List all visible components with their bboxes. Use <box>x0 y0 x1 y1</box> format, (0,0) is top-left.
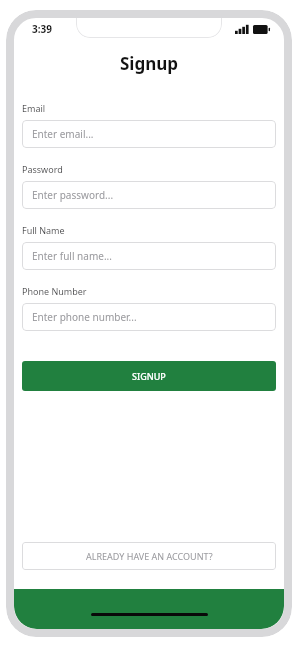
staticText: Email <box>22 102 46 114</box>
staticText: Password <box>22 163 63 175</box>
other: Home indicator <box>14 589 284 629</box>
staticText: SIGNUP <box>132 370 166 382</box>
staticText: Enter email... <box>32 127 94 141</box>
button[interactable]: Enter email... <box>22 120 276 148</box>
button[interactable]: Enter phone number... <box>22 303 276 331</box>
staticText: Enter phone number... <box>32 310 137 324</box>
staticText: Enter password... <box>32 188 114 202</box>
button[interactable]: Enter full name... <box>22 242 276 270</box>
staticText: Phone Number <box>22 285 87 297</box>
staticText: Full Name <box>22 224 65 236</box>
staticText: Signup <box>14 52 284 75</box>
staticText: ALREADY HAVE AN ACCOUNT? <box>86 550 213 562</box>
staticText: Enter full name... <box>32 249 112 263</box>
button[interactable]: ALREADY HAVE AN ACCOUNT? <box>22 542 276 570</box>
button[interactable]: SIGNUP <box>22 361 276 391</box>
button[interactable]: Enter password... <box>22 181 276 209</box>
staticText: 3:39 <box>32 22 52 36</box>
